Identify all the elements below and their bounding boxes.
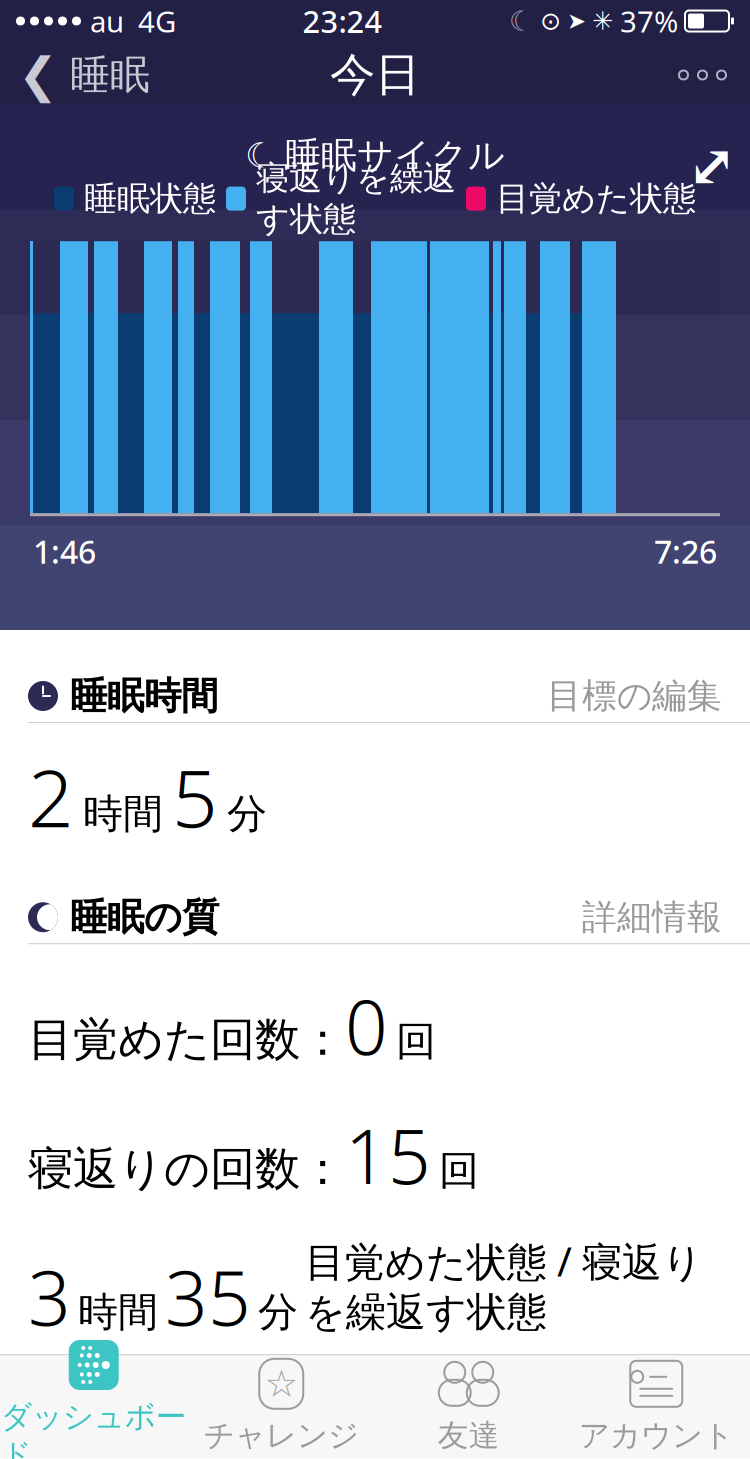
staticText: 2 bbox=[28, 743, 74, 849]
staticText: ☆ bbox=[265, 1363, 298, 1405]
staticText: 35 bbox=[165, 1247, 251, 1346]
button[interactable]: ❮ bbox=[0, 42, 168, 108]
staticText: アカウント bbox=[579, 1417, 734, 1454]
staticText: 時間 bbox=[78, 1288, 158, 1337]
staticText: 目覚めた状態 bbox=[496, 178, 696, 219]
staticText: ☾ bbox=[509, 5, 534, 37]
staticText: 睡眠 bbox=[70, 50, 150, 99]
button[interactable]: アカウント bbox=[562, 1349, 750, 1459]
staticText: 37% bbox=[620, 1, 678, 40]
staticText: 時間 bbox=[83, 789, 163, 838]
staticText: 詳細情報 bbox=[582, 896, 722, 938]
button[interactable]: ダッシュボード bbox=[0, 1330, 187, 1459]
staticText: ⊙ bbox=[540, 7, 561, 35]
staticText: 睡眠の質 bbox=[70, 894, 219, 940]
button[interactable]: 友達 bbox=[375, 1349, 562, 1459]
staticText: ➤ bbox=[567, 8, 586, 34]
staticText: 寝返りを繰返す状態 bbox=[256, 158, 456, 240]
staticText: 今日 bbox=[330, 47, 420, 103]
staticText: 5 bbox=[172, 743, 218, 849]
staticText: 回 bbox=[439, 1146, 479, 1195]
staticText: ☾ bbox=[245, 136, 276, 175]
button[interactable]: 詳細情報 bbox=[558, 886, 722, 948]
staticText: 分 bbox=[227, 789, 267, 838]
staticText: 23:24 bbox=[302, 1, 382, 41]
staticText: 睡眠状態 bbox=[84, 178, 216, 219]
button[interactable]: 拡大 bbox=[673, 132, 750, 225]
staticText: チャレンジ bbox=[204, 1417, 359, 1454]
button[interactable]: その他 bbox=[655, 42, 750, 108]
staticText: ⤢ bbox=[687, 132, 736, 199]
staticText: ダッシュボード bbox=[1, 1398, 187, 1459]
staticText: 目覚めた回数： bbox=[28, 1012, 345, 1067]
button[interactable]: ☆ bbox=[187, 1349, 375, 1459]
staticText: 目標の編集 bbox=[547, 675, 722, 717]
staticText: 1:46 bbox=[33, 530, 96, 573]
staticText: 7:26 bbox=[654, 530, 717, 573]
staticText: ❮ bbox=[18, 48, 58, 102]
staticText: 睡眠時間 bbox=[70, 673, 218, 719]
staticText: 4G bbox=[138, 1, 176, 40]
staticText: 分 bbox=[258, 1288, 298, 1337]
staticText: 回 bbox=[396, 1017, 436, 1066]
staticText: 0 bbox=[345, 976, 388, 1075]
staticText: 寝返りの回数： bbox=[28, 1141, 345, 1197]
staticText: 15 bbox=[345, 1105, 431, 1205]
staticText: 3 bbox=[28, 1247, 71, 1346]
button[interactable]: 目標の編集 bbox=[523, 665, 722, 727]
staticText: 目覚めた状態 / 寝返りを繰返す状態 bbox=[305, 1234, 703, 1337]
staticText: au bbox=[90, 1, 124, 40]
staticText: ✳ bbox=[592, 7, 613, 35]
staticText: 友達 bbox=[438, 1417, 500, 1454]
staticText: 睡眠サイクル bbox=[285, 133, 505, 178]
